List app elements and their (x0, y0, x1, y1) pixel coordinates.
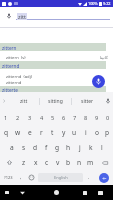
button[interactable]: 1 (0, 110, 12, 125)
button[interactable]: . (84, 170, 94, 185)
staticText: ?123 (4, 175, 13, 180)
button[interactable]: English (38, 173, 83, 182)
staticText: e (28, 128, 32, 137)
button[interactable]: o (91, 125, 102, 140)
button[interactable]: i (80, 125, 91, 140)
staticText: l (101, 143, 103, 152)
staticText: o (95, 128, 99, 137)
staticText: g (55, 143, 60, 152)
button[interactable]: y (58, 125, 69, 140)
button[interactable]: Back (17, 185, 27, 200)
button[interactable]: Home (51, 185, 61, 200)
button[interactable]: sitter (72, 92, 103, 110)
button[interactable]: g (52, 140, 63, 155)
button[interactable]: v (52, 155, 63, 170)
button[interactable]: u (69, 125, 80, 140)
button[interactable]: h (63, 140, 74, 155)
button[interactable]: x (30, 155, 41, 170)
button[interactable]: , (16, 170, 26, 185)
button[interactable]: Voice search (4, 11, 13, 20)
button[interactable]: e (24, 125, 36, 140)
button[interactable]: Backspace (96, 155, 113, 170)
staticText: 100% (88, 1, 98, 6)
button[interactable]: c (41, 155, 52, 170)
staticText: f (45, 143, 48, 152)
button[interactable]: w (12, 125, 24, 140)
button[interactable]: f (41, 140, 52, 155)
button[interactable]: Shift (0, 155, 18, 170)
button[interactable]: q (0, 125, 12, 140)
staticText: 5 (51, 114, 55, 122)
button[interactable]: ?123 (0, 170, 16, 185)
button[interactable]: n (74, 155, 85, 170)
staticText: s (22, 143, 26, 152)
staticText: zitt (20, 98, 28, 105)
staticText: , (20, 174, 22, 181)
staticText: u (72, 128, 77, 137)
staticText: zitternd (2, 63, 20, 69)
staticText: 8 (84, 114, 88, 122)
button[interactable]: a (6, 140, 18, 155)
button[interactable]: l (96, 140, 107, 155)
button[interactable]: Speak (92, 75, 105, 88)
button[interactable]: sitting (40, 92, 71, 110)
button[interactable]: 2 (12, 110, 24, 125)
button[interactable]: Emoji (26, 170, 37, 185)
button[interactable]: Voice input (103, 92, 113, 110)
button[interactable]: r (36, 125, 47, 140)
staticText: c (45, 158, 49, 167)
staticText: r (40, 128, 43, 137)
staticText: zittern (v) (6, 55, 26, 61)
staticText: m (87, 158, 94, 167)
button[interactable]: m (85, 155, 96, 170)
button[interactable]: d (30, 140, 41, 155)
staticText: 7 (73, 114, 77, 122)
button[interactable]: p (102, 125, 113, 140)
staticText: zitternd (adj) (6, 74, 33, 80)
staticText: zittern (2, 45, 17, 51)
staticText: d (33, 143, 38, 152)
staticText: v (56, 158, 60, 167)
button[interactable]: 9 (91, 110, 102, 125)
button[interactable]: Screenshot (95, 185, 105, 200)
staticText: 4 (40, 114, 44, 122)
button[interactable]: k (85, 140, 96, 155)
staticText: 0 (106, 114, 110, 122)
button[interactable]: b (63, 155, 74, 170)
staticText: zitterte (2, 87, 18, 92)
button[interactable]: t (47, 125, 58, 140)
button[interactable]: 3 (24, 110, 36, 125)
button[interactable]: 0 (102, 110, 113, 125)
staticText: sitting (48, 98, 63, 105)
staticText: z (22, 158, 26, 167)
button[interactable]: j (74, 140, 85, 155)
staticText: j (79, 143, 81, 152)
button[interactable]: 4 (36, 110, 47, 125)
button[interactable]: zittern (0, 43, 106, 51)
button[interactable]: 8 (80, 110, 91, 125)
staticText: t (51, 128, 54, 137)
staticText: zitt (18, 13, 26, 20)
staticText: h (66, 143, 71, 152)
button[interactable]: Hide keyboard (2, 185, 12, 200)
staticText: English (54, 175, 68, 180)
button[interactable]: zitternd (0, 61, 106, 69)
button[interactable]: 6 (58, 110, 69, 125)
button[interactable]: 7 (69, 110, 80, 125)
button[interactable]: Recents (80, 185, 90, 200)
button[interactable]: More suggestions (0, 92, 8, 110)
staticText: n (77, 158, 82, 167)
button[interactable]: zitt (8, 92, 39, 110)
button[interactable]: z (18, 155, 30, 170)
button[interactable]: 5 (47, 110, 58, 125)
staticText: b (66, 158, 71, 167)
button[interactable]: Enter (94, 170, 113, 185)
staticText: q (4, 128, 9, 137)
staticText: . (88, 174, 90, 181)
staticText: 1 (4, 114, 8, 122)
staticText: کانپنا (76, 55, 108, 60)
staticText: 2 (16, 114, 20, 122)
staticText: 9 (95, 114, 99, 122)
staticText: 3 (28, 114, 32, 122)
button[interactable]: s (18, 140, 30, 155)
